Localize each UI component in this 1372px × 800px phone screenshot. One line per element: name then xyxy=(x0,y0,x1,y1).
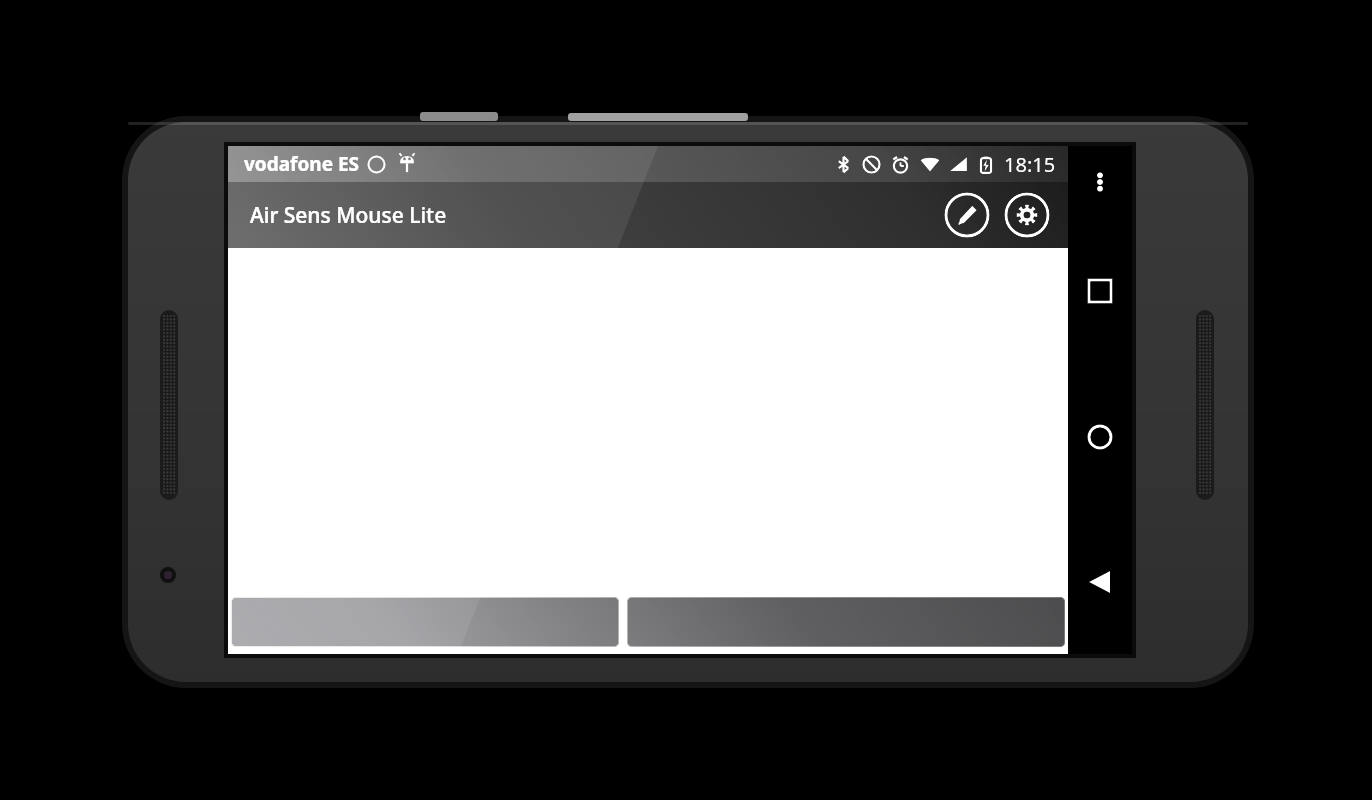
staticText: Air Sens Mouse Lite xyxy=(250,201,447,230)
button[interactable]: Right mouse button xyxy=(627,597,1065,647)
button[interactable]: Edit xyxy=(944,192,990,238)
button[interactable]: Settings xyxy=(1004,192,1050,238)
button[interactable]: Recents xyxy=(1068,218,1132,364)
staticText: 18:15 xyxy=(1004,151,1056,178)
button[interactable]: Back xyxy=(1068,509,1132,654)
button[interactable]: More options xyxy=(1068,146,1132,218)
button[interactable]: Left mouse button xyxy=(231,597,619,647)
staticText: vodafone ES xyxy=(244,151,360,177)
button[interactable]: Home xyxy=(1068,364,1132,509)
